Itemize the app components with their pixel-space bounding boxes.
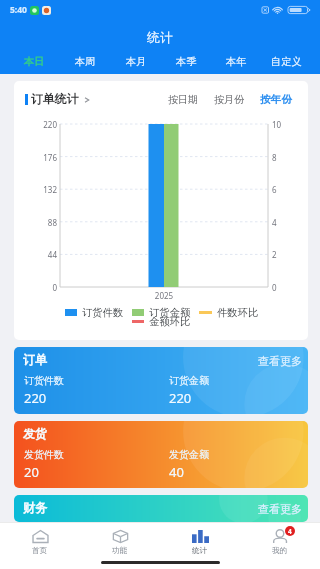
staticText: 发货件数 bbox=[24, 448, 64, 461]
staticText: 0 bbox=[272, 282, 306, 293]
staticText: 本季 bbox=[176, 55, 197, 68]
staticText: 本周 bbox=[75, 55, 96, 68]
button[interactable]: 本年 bbox=[211, 50, 261, 72]
staticText: 8 bbox=[272, 152, 306, 163]
button[interactable]: 本周 bbox=[60, 50, 111, 72]
staticText: 金额环比 bbox=[149, 315, 191, 328]
staticText: 自定义 bbox=[271, 55, 302, 68]
staticText: 176 bbox=[16, 152, 57, 163]
staticText: 订货金额 bbox=[169, 374, 209, 387]
staticText: 按日期 bbox=[168, 93, 198, 106]
button[interactable]: 本日 bbox=[9, 50, 60, 72]
button[interactable]: 查看更多 bbox=[258, 502, 302, 516]
button[interactable]: 按日期 bbox=[166, 93, 200, 106]
staticText: 订货金额 bbox=[149, 306, 191, 319]
button[interactable]: 按月份 bbox=[212, 93, 246, 106]
staticText: 220 bbox=[16, 119, 57, 130]
button[interactable]: 本月 bbox=[111, 50, 161, 72]
staticText: 本年 bbox=[226, 55, 247, 68]
staticText: 40 bbox=[169, 463, 184, 481]
staticText: 4 bbox=[272, 217, 306, 228]
staticText: 发货金额 bbox=[169, 448, 209, 461]
staticText: 5:40 bbox=[10, 4, 27, 16]
staticText: 2 bbox=[272, 249, 306, 260]
staticText: 发货 bbox=[23, 426, 47, 441]
staticText: 统计 bbox=[192, 546, 208, 556]
button[interactable]: 按年份 bbox=[258, 93, 294, 106]
button[interactable]: 查看更多 bbox=[258, 354, 302, 368]
staticText: 订单统计 bbox=[31, 92, 79, 107]
staticText: 订货件数 bbox=[24, 374, 64, 387]
button[interactable]: 4 bbox=[240, 523, 320, 556]
staticText: 2025 bbox=[60, 290, 268, 301]
staticText: 统计 bbox=[147, 29, 173, 45]
staticText: 88 bbox=[16, 217, 57, 228]
staticText: 20 bbox=[24, 463, 39, 481]
button[interactable]: 订单 bbox=[14, 347, 308, 414]
staticText: 功能 bbox=[112, 546, 128, 556]
staticText: 4 bbox=[288, 527, 292, 536]
staticText: 订货件数 bbox=[82, 306, 124, 319]
staticText: 10 bbox=[272, 119, 306, 130]
staticText: 查看更多 bbox=[258, 502, 302, 516]
staticText: 查看更多 bbox=[258, 354, 302, 368]
staticText: 财务 bbox=[23, 500, 47, 515]
staticText: 首页 bbox=[32, 546, 48, 556]
staticText: 220 bbox=[24, 389, 47, 407]
staticText: 220 bbox=[169, 389, 192, 407]
button[interactable]: 功能 bbox=[80, 523, 160, 556]
staticText: 6 bbox=[272, 184, 306, 195]
staticText: 按年份 bbox=[260, 93, 292, 106]
button[interactable]: 本季 bbox=[161, 50, 211, 72]
button[interactable]: 订单统计 bbox=[25, 92, 91, 107]
button[interactable]: 首页 bbox=[0, 523, 80, 556]
staticText: 按月份 bbox=[214, 93, 244, 106]
button[interactable]: 自定义 bbox=[261, 50, 311, 72]
staticText: 本月 bbox=[126, 55, 147, 68]
staticText: 132 bbox=[16, 184, 57, 195]
button[interactable]: 财务 bbox=[14, 495, 308, 522]
staticText: 0 bbox=[16, 282, 57, 293]
staticText: 订单 bbox=[23, 352, 47, 367]
button[interactable]: 发货 bbox=[14, 421, 308, 488]
button[interactable]: 统计 bbox=[160, 523, 240, 556]
staticText: 件数环比 bbox=[217, 306, 259, 319]
staticText: 我的 bbox=[272, 546, 288, 556]
staticText: 44 bbox=[16, 249, 57, 260]
staticText: 本日 bbox=[24, 55, 45, 68]
